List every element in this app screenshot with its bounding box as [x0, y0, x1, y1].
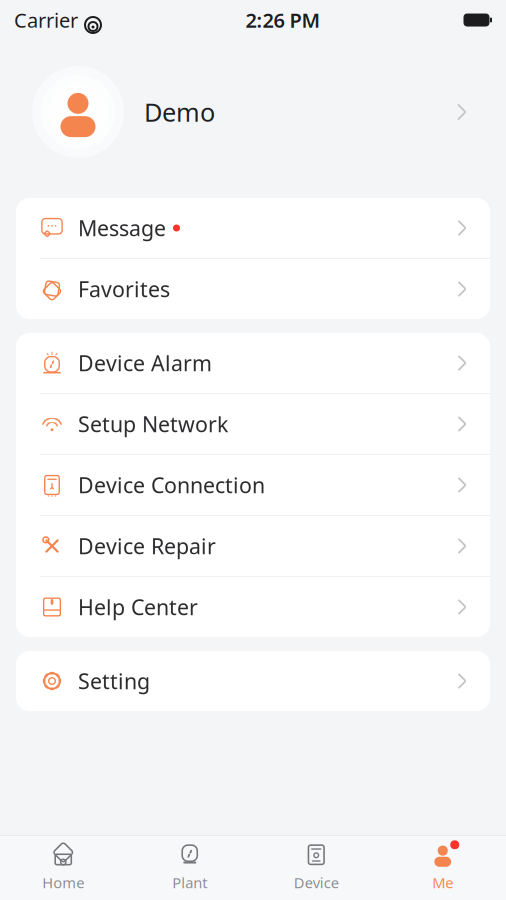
button[interactable]: Demo [0, 56, 506, 168]
staticText: Setup Network [78, 410, 228, 438]
staticText: Device Alarm [78, 349, 212, 377]
button[interactable]: Plant [126, 834, 253, 900]
button[interactable]: Device Alarm [16, 333, 490, 393]
staticText: Favorites [78, 275, 170, 303]
staticText: Setting [78, 667, 150, 695]
staticText: Me [432, 873, 453, 892]
button[interactable]: Favorites [16, 259, 490, 319]
staticText: Help Center [78, 593, 198, 621]
staticText: Message [78, 214, 166, 242]
button[interactable]: Message [16, 198, 490, 258]
staticText: 2:26 PM [245, 7, 320, 33]
button[interactable]: Setup Network [16, 394, 490, 454]
staticText: Home [42, 873, 84, 892]
button[interactable]: Home [0, 834, 126, 900]
button[interactable]: Device [253, 834, 379, 900]
staticText: Device Repair [78, 532, 216, 560]
button[interactable]: Help Center [16, 577, 490, 637]
button[interactable]: Me [379, 834, 506, 900]
staticText: Device Connection [78, 471, 265, 499]
staticText: Carrier [14, 7, 78, 33]
staticText: Plant [172, 873, 207, 892]
button[interactable]: Device Connection [16, 455, 490, 515]
button[interactable]: Setting [16, 651, 490, 711]
staticText: Device [294, 873, 339, 892]
button[interactable]: Device Repair [16, 516, 490, 576]
staticText: Demo [144, 95, 215, 129]
